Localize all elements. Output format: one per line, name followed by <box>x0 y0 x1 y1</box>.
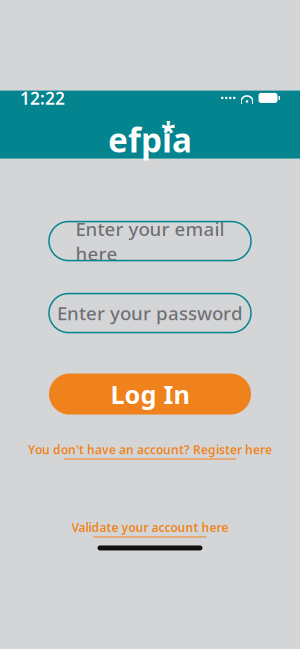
button[interactable]: Validate your account here <box>71 519 228 537</box>
button[interactable]: You don't have an account? Register here <box>28 442 272 459</box>
staticText: Validate your account here <box>71 519 228 535</box>
staticText: * <box>161 114 175 149</box>
staticText: Enter your email here <box>75 216 224 266</box>
staticText: Enter your password <box>57 301 243 325</box>
button[interactable]: Enter your password <box>49 294 251 333</box>
button[interactable]: Log In <box>49 374 251 415</box>
staticText: You don't have an account? Register here <box>28 442 272 457</box>
staticText: 12:22 <box>20 86 65 109</box>
button[interactable]: Enter your email here <box>49 222 251 261</box>
staticText: Log In <box>110 377 189 411</box>
staticText: efpia <box>108 117 192 162</box>
